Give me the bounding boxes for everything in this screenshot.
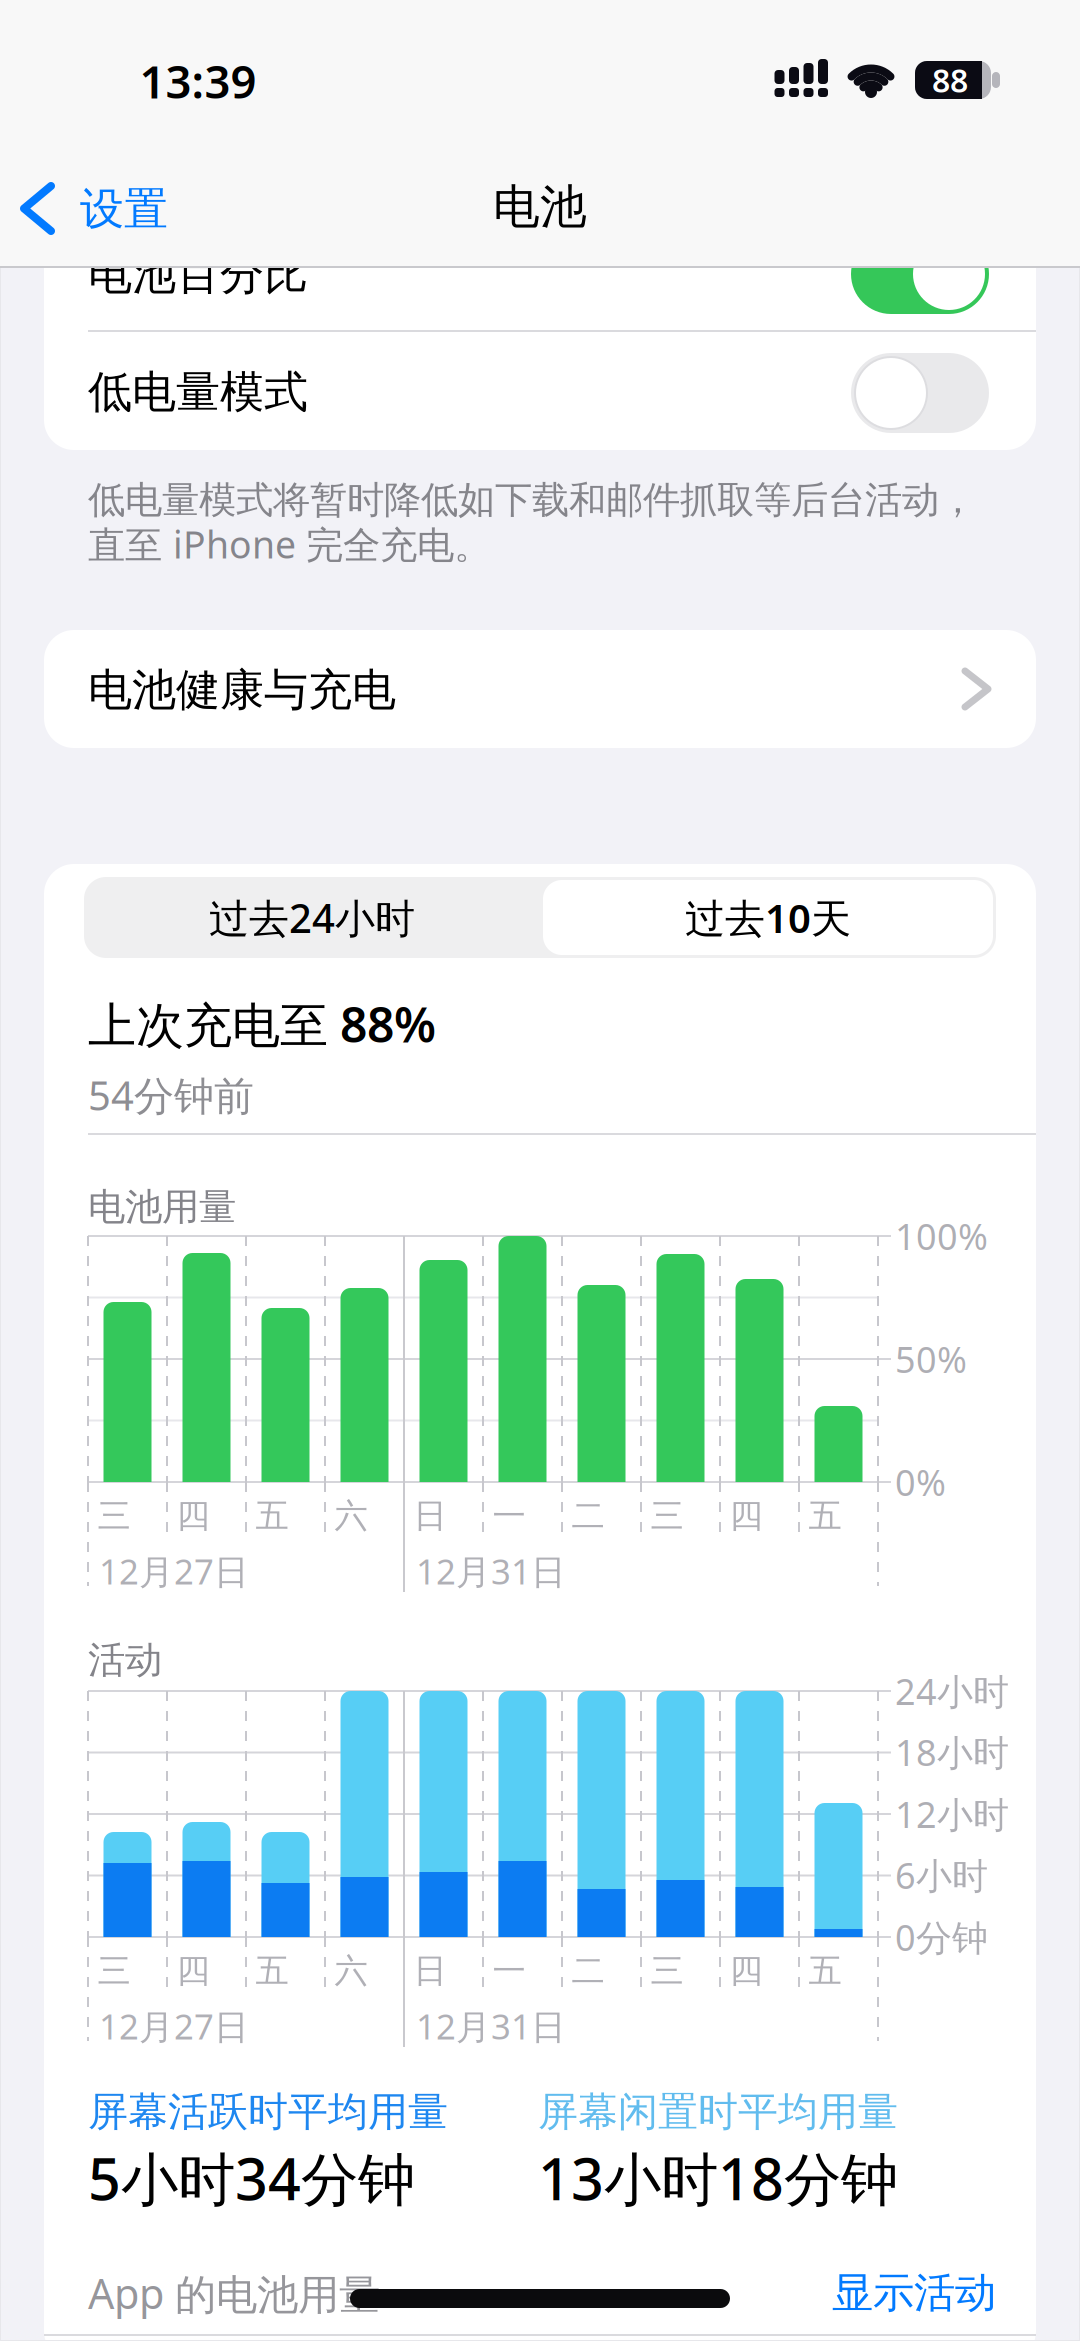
staticText: 12月27日 [99,2003,249,2049]
staticText: 一 [492,1495,525,1536]
staticText: 电池用量 [88,1184,236,1230]
staticText: 过去10天 [685,891,851,944]
staticText: 五 [255,1495,288,1536]
staticText: 0分钟 [895,1913,988,1961]
staticText: 五 [808,1495,841,1536]
button[interactable]: 电池百分比 [851,234,989,314]
staticText: 88 [932,59,968,101]
staticText: 屏幕活跃时平均用量 [88,2087,448,2136]
staticText: 五 [255,1950,288,1991]
staticText: 12月27日 [99,1548,249,1594]
button[interactable]: 过去10天 [543,880,993,955]
button[interactable]: 显示活动 [736,2261,996,2325]
button[interactable]: 低电量模式 [851,353,989,433]
staticText: 六 [334,1495,367,1536]
staticText: 六 [334,1950,367,1991]
staticText: 直至 iPhone 完全充电。 [88,519,491,569]
staticText: 三 [650,1495,683,1536]
staticText: 二 [571,1495,604,1536]
staticText: 13小时18分钟 [538,2140,898,2216]
staticText: 三 [97,1495,130,1536]
staticText: 13:39 [139,51,256,111]
staticText: 五 [808,1950,841,1991]
staticText: 三 [97,1950,130,1991]
staticText: 设置 [80,182,168,236]
staticText: 四 [729,1495,762,1536]
staticText: 0% [895,1458,946,1506]
button[interactable]: 设置 [14,176,224,241]
staticText: 5小时34分钟 [88,2140,415,2216]
staticText: 屏幕闲置时平均用量 [538,2087,898,2136]
staticText: 50% [895,1335,967,1383]
staticText: 电池健康与充电 [88,663,396,717]
staticText: 24小时 [895,1667,1009,1715]
staticText: 低电量模式将暂时降低如下载和邮件抓取等后台活动， [88,477,976,523]
staticText: 三 [650,1950,683,1991]
staticText: 12月31日 [416,1548,566,1594]
button[interactable]: 过去24小时 [84,877,540,958]
staticText: 四 [729,1950,762,1991]
staticText: 18小时 [895,1728,1009,1776]
staticText: 二 [571,1950,604,1991]
staticText: 电池 [493,178,587,236]
staticText: 100% [895,1212,988,1260]
staticText: 电池百分比 [88,247,308,301]
staticText: 过去24小时 [209,891,415,944]
staticText: 日 [413,1495,446,1536]
staticText: 四 [176,1950,209,1991]
staticText: 活动 [88,1637,162,1683]
staticText: 12月31日 [416,2003,566,2049]
staticText: 一 [492,1950,525,1991]
staticText: 上次充电至 88% [88,992,436,1056]
button[interactable]: 电池健康与充电 [44,630,1036,748]
staticText: 54分钟前 [88,1068,254,1121]
staticText: 显示活动 [832,2268,996,2318]
staticText: 低电量模式 [88,365,308,419]
staticText: 四 [176,1495,209,1536]
staticText: 日 [413,1950,446,1991]
staticText: App 的电池用量 [88,2265,380,2320]
staticText: 12小时 [895,1790,1009,1838]
staticText: 6小时 [895,1851,988,1899]
